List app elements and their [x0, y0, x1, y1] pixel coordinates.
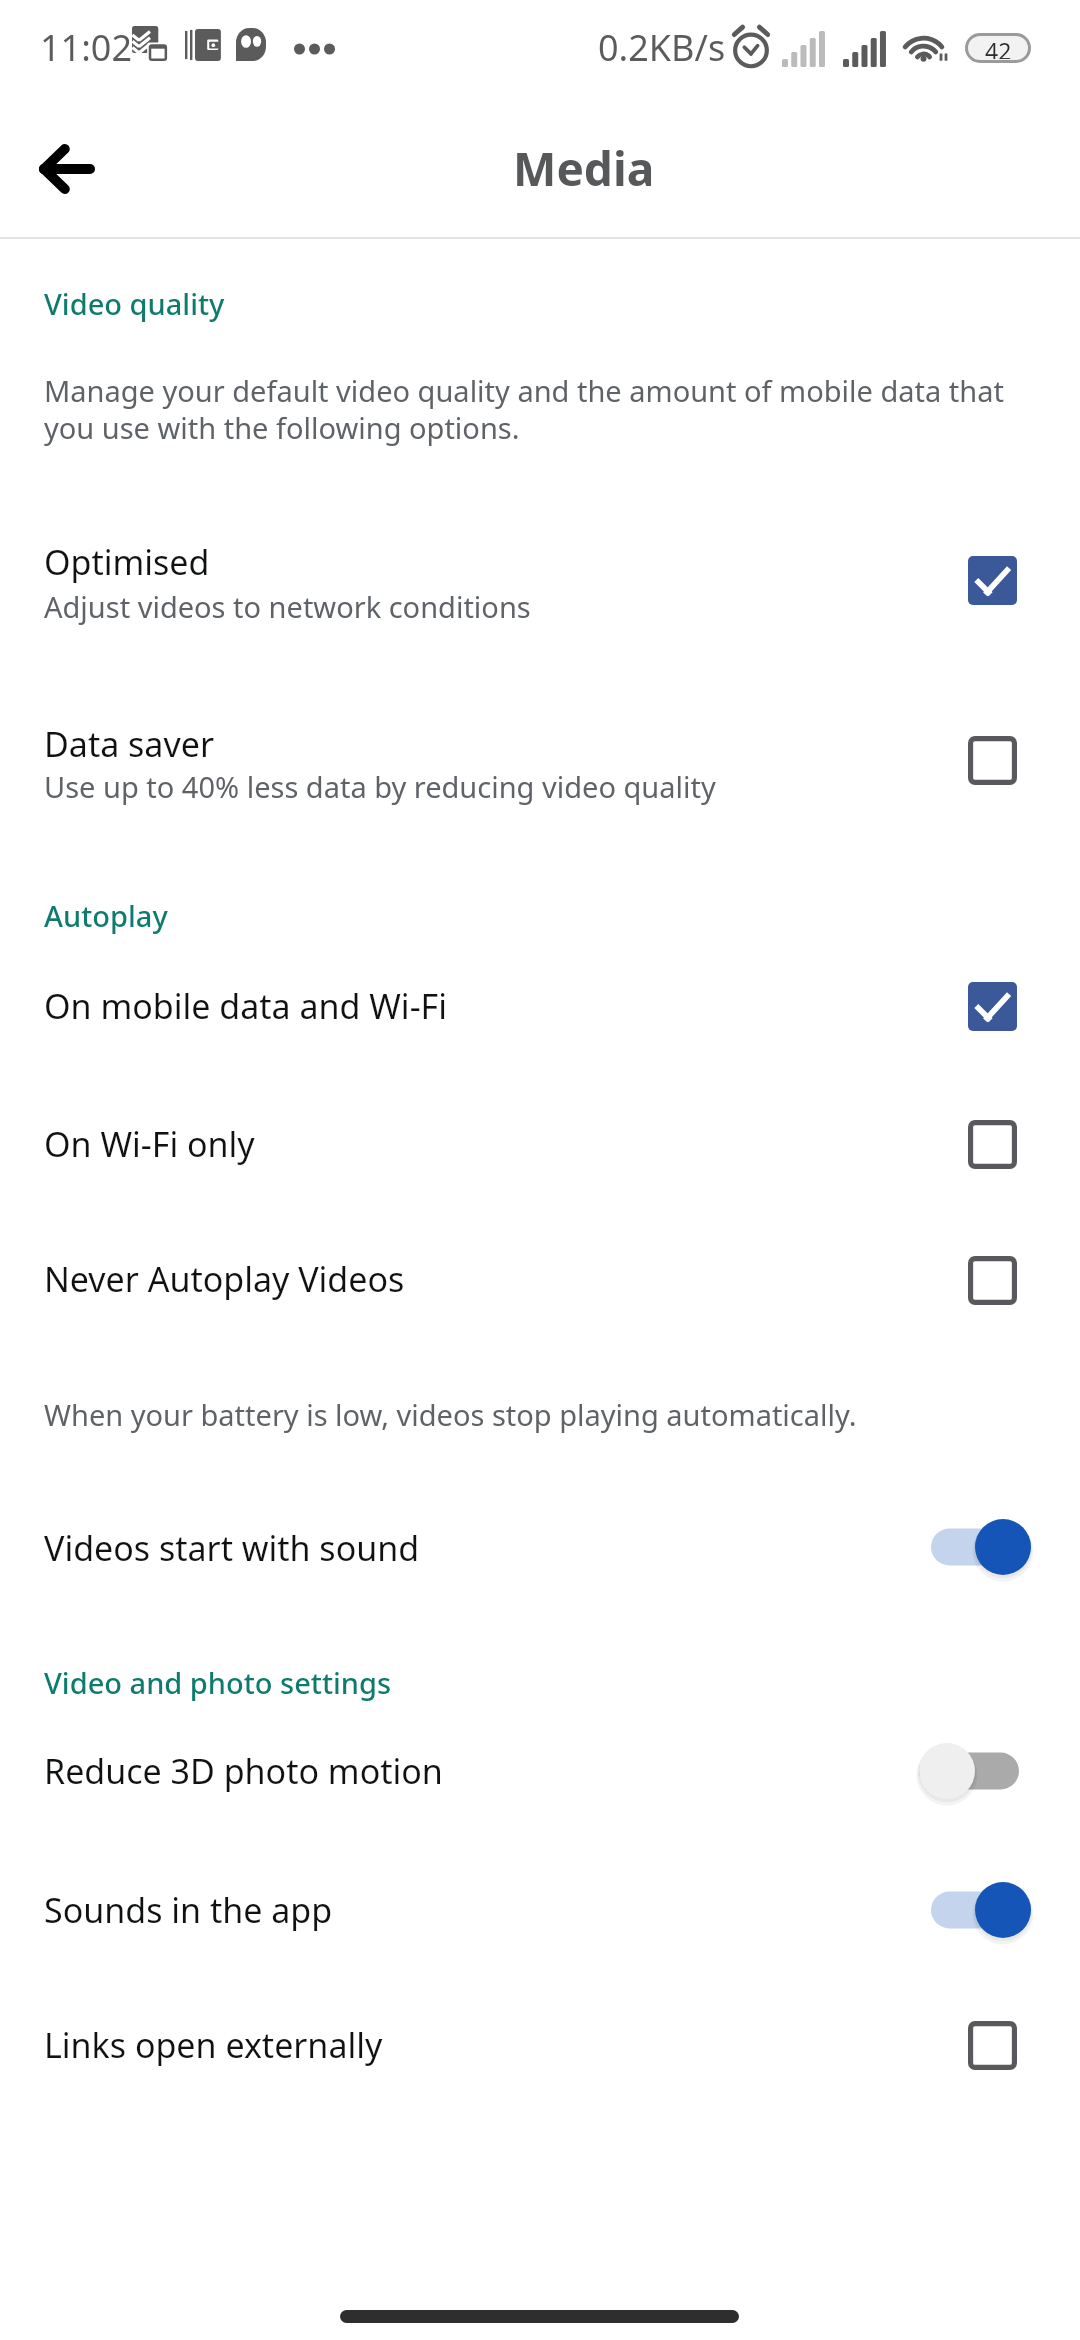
staticText: On mobile data and Wi-Fi: [44, 983, 448, 1029]
staticText: On Wi-Fi only: [44, 1121, 255, 1167]
button[interactable]: On mobile data and Wi-Fi: [0, 951, 1080, 1043]
staticText: Videos start with sound: [44, 1525, 420, 1571]
staticText: Optimised: [44, 539, 210, 585]
staticText: Links open externally: [44, 2022, 383, 2068]
staticText: Reduce 3D photo motion: [44, 1748, 443, 1794]
button[interactable]: Back: [11, 114, 121, 224]
button[interactable]: Data saver: [0, 697, 1080, 816]
button[interactable]: On Wi-Fi only: [0, 1089, 1080, 1181]
staticText: Use up to 40% less data by reducing vide…: [44, 767, 716, 806]
staticText: Video quality: [44, 284, 225, 323]
staticText: 42: [985, 36, 1012, 59]
button[interactable]: Never Autoplay Videos: [0, 1224, 1080, 1316]
staticText: Video and photo settings: [44, 1663, 392, 1702]
button[interactable]: Videos start with sound: [0, 1493, 1080, 1585]
staticText: 11:02: [40, 23, 133, 72]
staticText: When your battery is low, videos stop pl…: [44, 1395, 1054, 1434]
staticText: Adjust videos to network conditions: [44, 587, 531, 626]
staticText: Autoplay: [44, 896, 168, 935]
staticText: Data saver: [44, 721, 214, 767]
staticText: Manage your default video quality and th…: [44, 371, 1054, 448]
staticText: 0.2KB/s: [598, 23, 726, 72]
button[interactable]: Links open externally: [0, 1990, 1080, 2082]
staticText: Media: [513, 137, 655, 200]
staticText: Sounds in the app: [44, 1887, 333, 1933]
staticText: Never Autoplay Videos: [44, 1256, 405, 1302]
button[interactable]: Optimised: [0, 515, 1080, 636]
button[interactable]: Reduce 3D photo motion: [0, 1716, 1080, 1808]
button[interactable]: Sounds in the app: [0, 1855, 1080, 1947]
